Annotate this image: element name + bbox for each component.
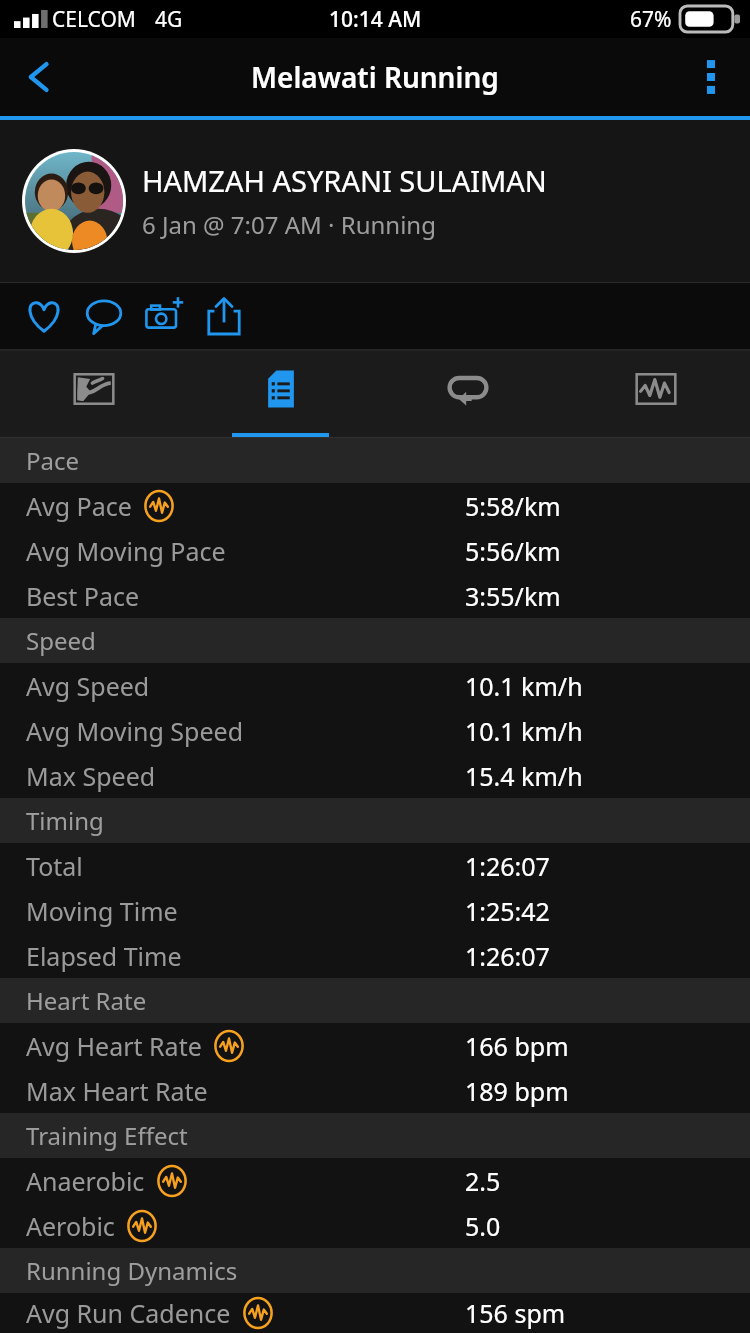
staticText: Training Effect xyxy=(26,1119,188,1152)
staticText: 6 Jan @ 7:07 AM · Running xyxy=(142,208,436,241)
staticText: Pace xyxy=(26,444,80,477)
staticText: Max Speed xyxy=(26,759,156,793)
staticText: Moving Time xyxy=(26,894,178,928)
staticText: Anaerobic xyxy=(26,1164,145,1198)
button[interactable]: Share xyxy=(194,286,254,346)
staticText: 2.5 xyxy=(465,1164,750,1198)
button[interactable]: Avg Run Cadence xyxy=(0,1293,750,1333)
staticText: 10.1 km/h xyxy=(465,714,750,748)
button[interactable]: Aerobic xyxy=(0,1203,750,1248)
staticText: Running Dynamics xyxy=(26,1254,238,1287)
button[interactable]: Add photo xyxy=(134,286,194,346)
staticText: Elapsed Time xyxy=(26,939,182,973)
button[interactable]: Details xyxy=(187,351,374,437)
button[interactable]: Avg Heart Rate xyxy=(0,1023,750,1068)
staticText: 10:14 AM xyxy=(329,5,422,34)
button[interactable]: Profile photo xyxy=(25,152,123,250)
button[interactable]: Comment xyxy=(74,286,134,346)
staticText: Melawati Running xyxy=(251,58,499,96)
staticText: Avg Run Cadence xyxy=(26,1296,231,1330)
button[interactable]: Avg Pace xyxy=(0,483,750,528)
button[interactable]: Laps xyxy=(374,351,562,437)
button[interactable]: More options xyxy=(672,38,750,116)
staticText: 67% xyxy=(630,5,672,34)
staticText: CELCOM xyxy=(52,5,136,34)
button[interactable]: Elapsed Time xyxy=(0,933,750,978)
staticText: Max Heart Rate xyxy=(26,1074,208,1108)
staticText: Avg Pace xyxy=(26,489,132,523)
staticText: 5.0 xyxy=(465,1209,750,1243)
staticText: 3:55/km xyxy=(465,579,750,613)
button[interactable]: Best Pace xyxy=(0,573,750,618)
staticText: 156 spm xyxy=(465,1296,750,1330)
button[interactable]: Max Speed xyxy=(0,753,750,798)
staticText: 1:26:07 xyxy=(465,849,750,883)
staticText: Aerobic xyxy=(26,1209,115,1243)
staticText: Avg Speed xyxy=(26,669,150,703)
button[interactable]: Charts xyxy=(562,351,750,437)
staticText: 15.4 km/h xyxy=(465,759,750,793)
button[interactable]: Map xyxy=(0,351,187,437)
staticText: 166 bpm xyxy=(465,1029,750,1063)
button[interactable]: Like xyxy=(14,286,74,346)
staticText: 1:26:07 xyxy=(465,939,750,973)
staticText: 4G xyxy=(155,5,183,34)
button[interactable]: Back xyxy=(0,38,78,116)
staticText: Avg Moving Speed xyxy=(26,714,244,748)
button[interactable]: Avg Moving Speed xyxy=(0,708,750,753)
staticText: Heart Rate xyxy=(26,984,147,1017)
staticText: Timing xyxy=(26,804,104,837)
button[interactable]: Moving Time xyxy=(0,888,750,933)
staticText: HAMZAH ASYRANI SULAIMAN xyxy=(142,161,547,200)
staticText: Avg Moving Pace xyxy=(26,534,226,568)
button[interactable]: Anaerobic xyxy=(0,1158,750,1203)
staticText: Speed xyxy=(26,624,96,657)
staticText: 189 bpm xyxy=(465,1074,750,1108)
staticText: 5:56/km xyxy=(465,534,750,568)
staticText: Best Pace xyxy=(26,579,140,613)
staticText: 10.1 km/h xyxy=(465,669,750,703)
button[interactable]: Total xyxy=(0,843,750,888)
button[interactable]: Max Heart Rate xyxy=(0,1068,750,1113)
staticText: 1:25:42 xyxy=(465,894,750,928)
staticText: 5:58/km xyxy=(465,489,750,523)
staticText: Total xyxy=(26,849,83,883)
staticText: Avg Heart Rate xyxy=(26,1029,202,1063)
button[interactable]: Avg Moving Pace xyxy=(0,528,750,573)
button[interactable]: Avg Speed xyxy=(0,663,750,708)
